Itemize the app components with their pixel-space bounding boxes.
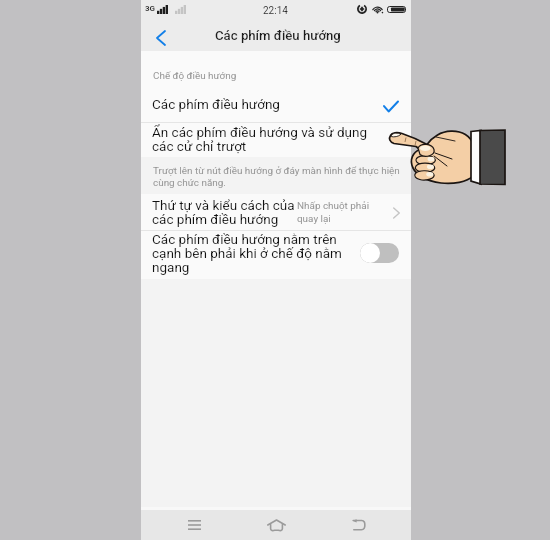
staticText: các phím điều hướng [152,211,279,227]
button[interactable]: Toggle navigation keys on right edge [360,243,399,263]
button[interactable]: Back [147,21,175,53]
staticText: Chế độ điều hướng [153,70,237,82]
staticText: Thứ tự và kiểu cách của [152,197,295,213]
button[interactable] [141,92,411,122]
button[interactable]: Recent apps [165,510,223,540]
button[interactable] [141,123,411,157]
staticText: các cử chỉ trượt [152,138,247,154]
staticText: cùng chức năng. [153,177,226,189]
staticText: 3G [145,4,156,13]
button[interactable]: Back [329,510,387,540]
staticText: Các phím điều hướng [215,28,341,43]
button[interactable]: Home [247,510,305,540]
staticText: cạnh bên phải khi ở chế độ nằm [152,245,342,261]
staticText: Nhấp chuột phải [297,200,370,212]
button[interactable] [141,231,411,278]
staticText: Các phím điều hướng nằm trên [152,231,337,247]
button[interactable] [141,194,411,230]
staticText: quay lại [297,213,331,225]
staticText: Trượt lên từ nút điều hướng ở đáy màn hì… [153,165,400,177]
staticText: ngang [152,259,190,275]
staticText: Ẩn các phím điều hướng và sử dụng [152,124,368,140]
staticText: Các phím điều hướng [152,96,280,112]
staticText: 22:14 [263,5,288,17]
